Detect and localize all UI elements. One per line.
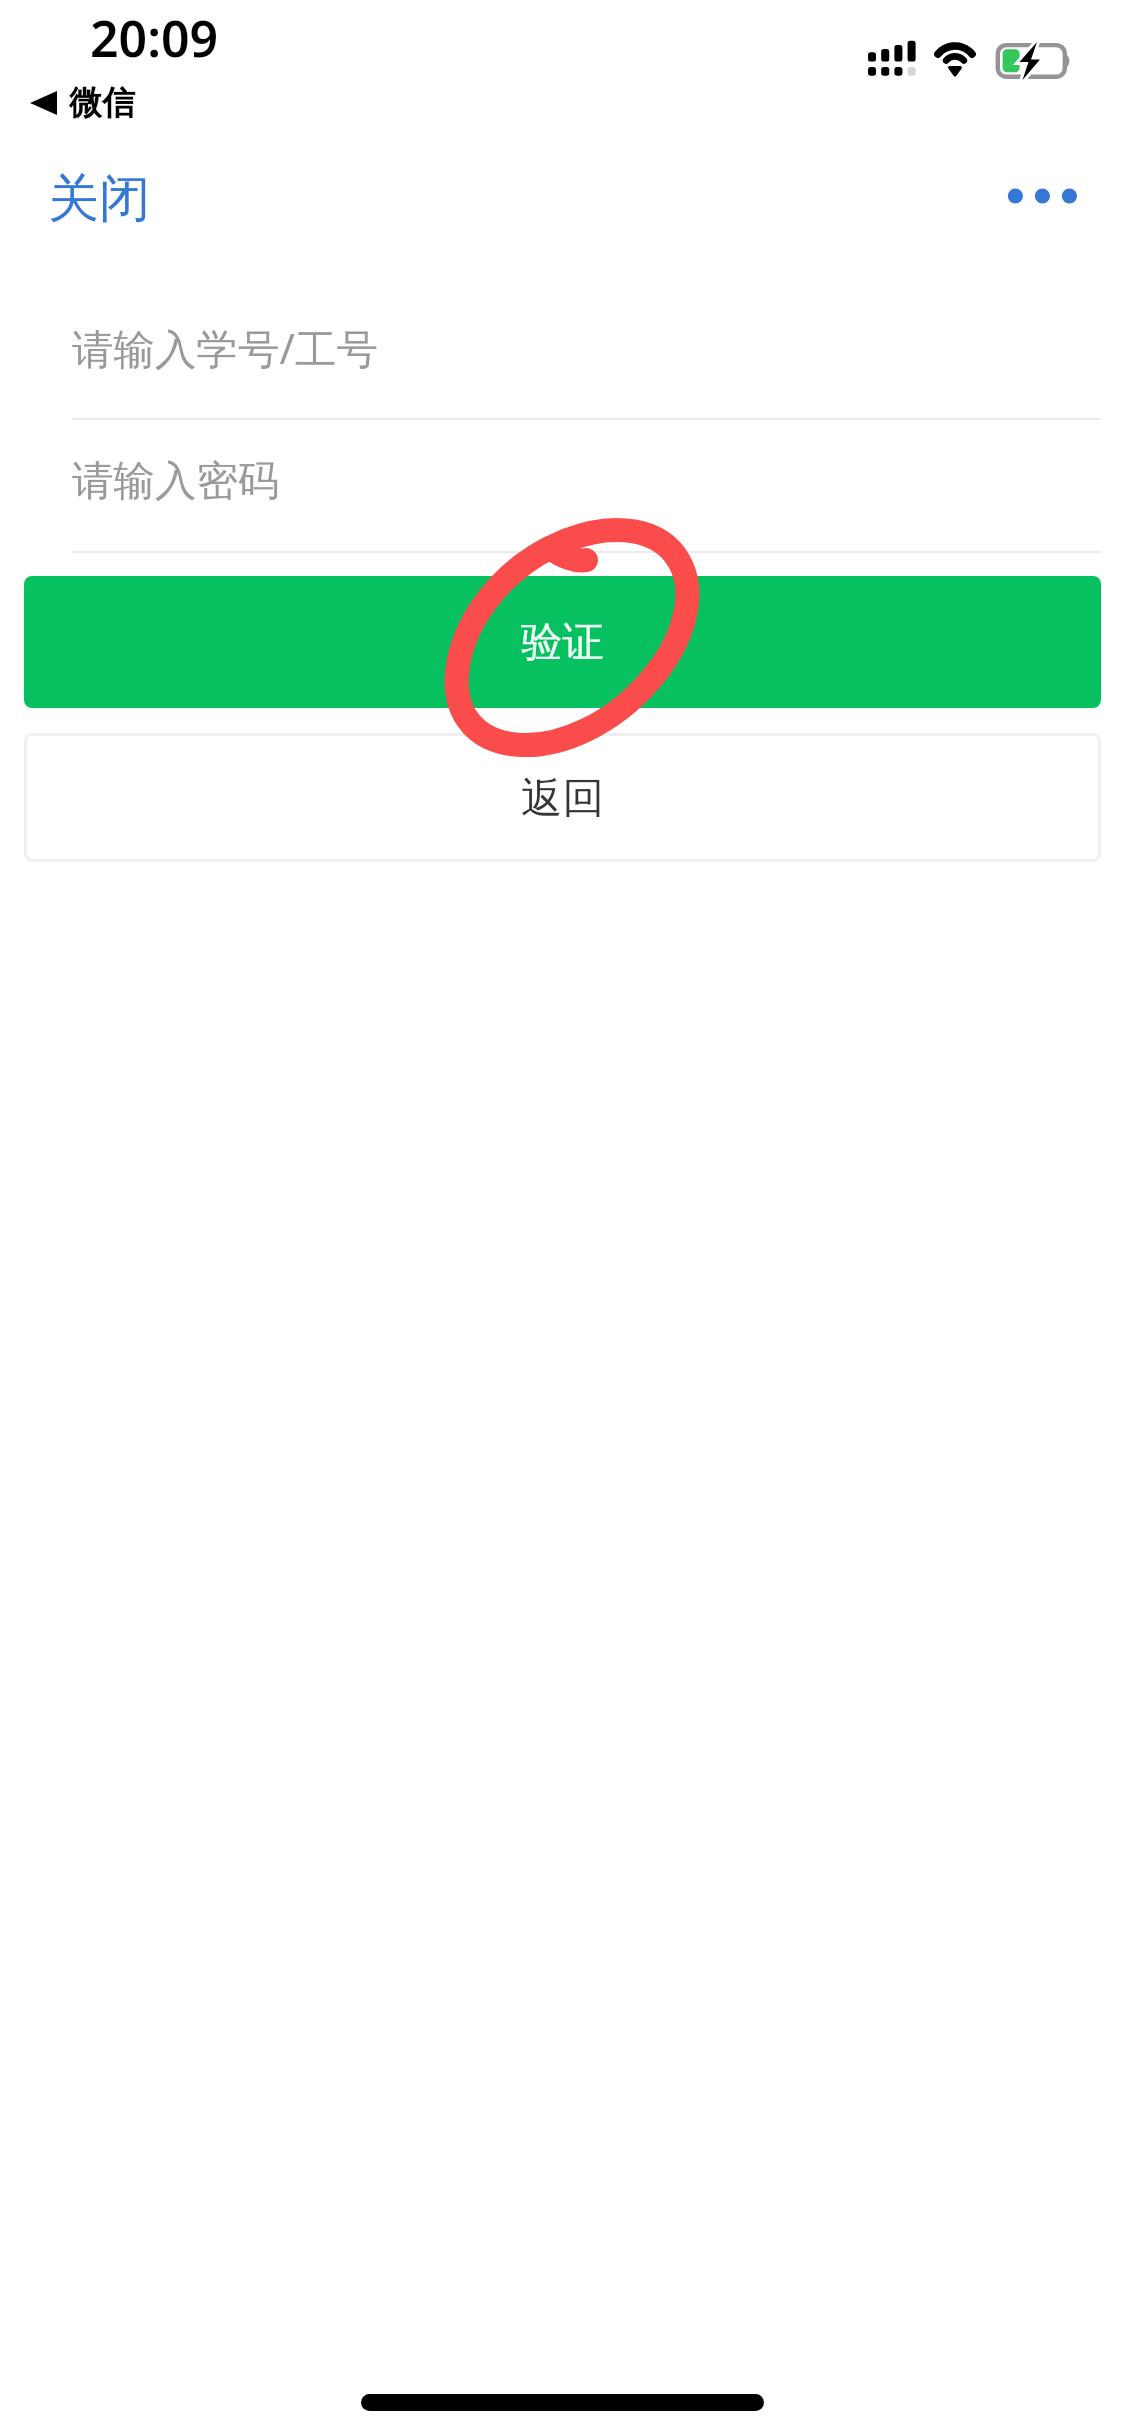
- button[interactable]: 关闭: [29, 152, 169, 246]
- staticText: 请输入密码: [72, 455, 280, 507]
- button[interactable]: More options: [988, 156, 1090, 236]
- button[interactable]: 请输入密码: [0, 431, 1125, 531]
- staticText: 微信: [69, 82, 135, 124]
- button[interactable]: 验证: [24, 576, 1101, 708]
- staticText: 验证: [521, 616, 604, 668]
- button[interactable]: 请输入学号/工号: [0, 298, 1125, 398]
- staticText: 返回: [521, 772, 604, 824]
- staticText: 20:09: [90, 4, 219, 72]
- button[interactable]: Back to WeChat: [24, 82, 135, 124]
- button[interactable]: 返回: [24, 733, 1101, 862]
- staticText: 关闭: [48, 167, 150, 231]
- staticText: 请输入学号/工号: [72, 320, 378, 377]
